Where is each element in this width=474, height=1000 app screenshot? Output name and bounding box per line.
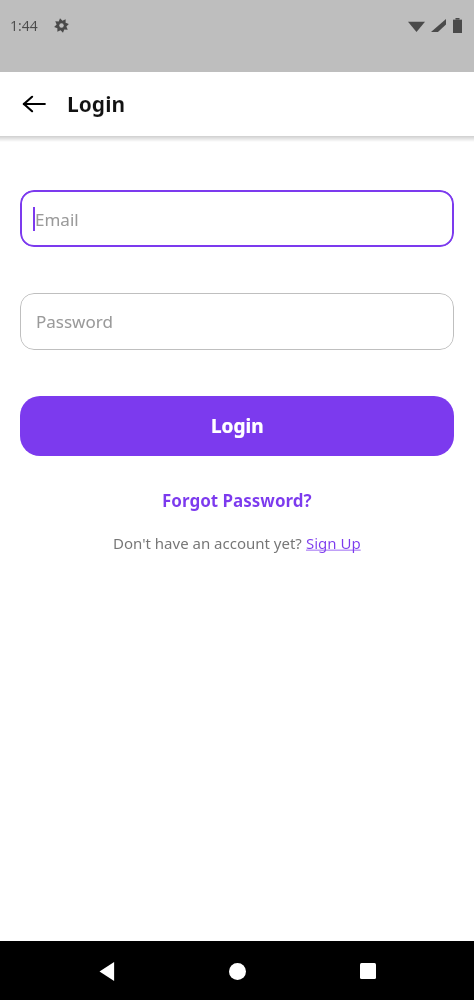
button[interactable]: Email	[20, 190, 454, 247]
button[interactable]: Back	[83, 947, 131, 995]
staticText: Email	[35, 208, 79, 231]
button[interactable]: Login	[20, 396, 454, 456]
staticText: Sign Up	[306, 533, 361, 553]
button[interactable]: Recents	[344, 947, 392, 995]
staticText: Forgot Password?	[162, 489, 312, 512]
staticText: Login	[67, 90, 126, 119]
staticText: Login	[211, 413, 264, 439]
staticText: Password	[36, 310, 113, 333]
button[interactable]: Sign Up	[306, 533, 361, 553]
staticText: Don't have an account yet?	[113, 533, 306, 553]
button[interactable]: Home	[213, 947, 261, 995]
button[interactable]: Back	[12, 82, 56, 126]
button[interactable]: Forgot Password?	[152, 486, 322, 515]
button[interactable]: Password	[20, 293, 454, 350]
staticText: 1:44	[10, 16, 38, 35]
